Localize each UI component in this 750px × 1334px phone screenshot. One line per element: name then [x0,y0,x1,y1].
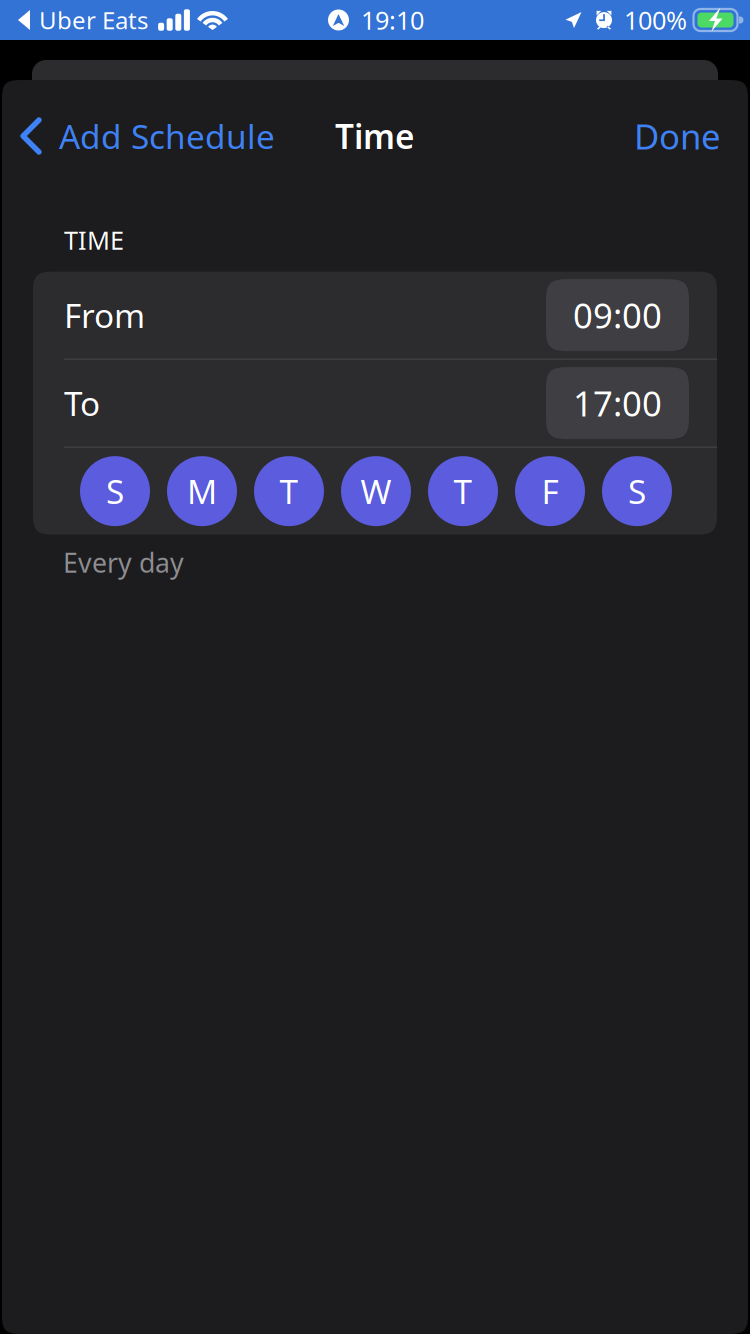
button[interactable]: 09:00 [546,279,689,351]
button[interactable]: Sunday [80,456,150,526]
staticText: 19:10 [361,3,424,37]
button[interactable]: Friday [515,456,585,526]
button[interactable]: Tuesday [254,456,324,526]
staticText: From [64,293,145,337]
staticText: 100% [624,3,687,37]
staticText: 17:00 [573,380,662,426]
button[interactable]: Thursday [428,456,498,526]
button[interactable]: Wednesday [341,456,411,526]
button[interactable]: Monday [167,456,237,526]
staticText: Time [335,114,415,158]
staticText: Uber Eats [39,4,148,36]
staticText: Add Schedule [59,114,275,158]
staticText: S [628,469,646,513]
staticText: S [106,469,124,513]
staticText: T [453,469,472,513]
staticText: To [64,381,100,425]
button[interactable]: Add Schedule [2,102,275,170]
staticText: 09:00 [573,292,662,338]
staticText: Done [634,113,721,159]
staticText: TIME [64,223,124,257]
staticText: Every day [63,545,184,580]
button[interactable]: 17:00 [546,367,689,439]
staticText: T [279,469,298,513]
button[interactable]: Done [634,101,748,171]
staticText: M [187,469,217,513]
button[interactable]: Saturday [602,456,672,526]
staticText: W [360,469,391,513]
staticText: F [541,469,558,513]
